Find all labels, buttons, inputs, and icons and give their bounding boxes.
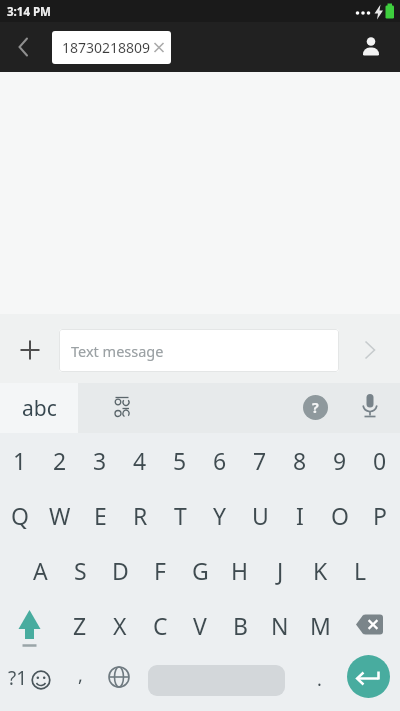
button[interactable] xyxy=(103,661,135,693)
staticText: W xyxy=(49,500,71,531)
button[interactable]: C xyxy=(140,599,180,651)
button[interactable]: Text message xyxy=(59,329,339,372)
staticText: Text message xyxy=(71,341,164,361)
button[interactable]: 3 xyxy=(80,434,120,486)
staticText: D xyxy=(112,555,129,586)
staticText: R xyxy=(133,500,148,531)
button[interactable] xyxy=(355,389,385,427)
staticText: A xyxy=(33,555,48,586)
staticText: 7 xyxy=(253,445,267,476)
staticText: O xyxy=(331,500,349,531)
staticText: Z xyxy=(73,610,87,641)
button[interactable] xyxy=(346,599,394,651)
staticText: T xyxy=(174,500,187,531)
staticText: 4 xyxy=(133,445,147,476)
button[interactable]: Y xyxy=(200,489,240,541)
button[interactable] xyxy=(11,331,49,369)
staticText: 0 xyxy=(373,445,387,476)
button[interactable]: ? xyxy=(303,395,328,420)
button[interactable]: E xyxy=(80,489,120,541)
button[interactable]: 8 xyxy=(280,434,320,486)
button[interactable]: 7 xyxy=(240,434,280,486)
button[interactable] xyxy=(148,665,285,696)
button[interactable] xyxy=(354,30,388,64)
button[interactable]: L xyxy=(340,544,380,596)
button[interactable]: F xyxy=(140,544,180,596)
staticText: L xyxy=(354,555,367,586)
button[interactable]: W xyxy=(40,489,80,541)
staticText: 6 xyxy=(213,445,227,476)
button[interactable]: I xyxy=(280,489,320,541)
staticText: , xyxy=(78,663,83,688)
staticText: C xyxy=(153,610,168,641)
button[interactable]: J xyxy=(260,544,300,596)
button[interactable]: 18730218809 xyxy=(52,31,171,64)
staticText: I xyxy=(296,500,304,531)
button[interactable]: G xyxy=(180,544,220,596)
button[interactable]: M xyxy=(300,599,340,651)
button[interactable]: Z xyxy=(60,599,100,651)
staticText: 9 xyxy=(333,445,347,476)
button[interactable]: U xyxy=(240,489,280,541)
staticText: 18730218809 xyxy=(62,38,151,57)
button[interactable]: N xyxy=(260,599,300,651)
button[interactable] xyxy=(347,655,390,698)
staticText: 2 xyxy=(53,445,67,476)
staticText: ?1 xyxy=(8,665,28,691)
staticText: 3 xyxy=(93,445,107,476)
staticText: Q xyxy=(11,500,29,531)
staticText: 3:14 PM xyxy=(7,4,51,20)
button[interactable]: abc xyxy=(0,383,78,433)
staticText: N xyxy=(271,610,289,641)
button[interactable]: 2 xyxy=(40,434,80,486)
staticText: 1 xyxy=(13,445,27,476)
button[interactable]: A xyxy=(20,544,60,596)
staticText: U xyxy=(252,500,269,531)
button[interactable] xyxy=(352,332,388,368)
button[interactable] xyxy=(10,599,50,651)
button[interactable]: ?1 xyxy=(6,655,56,703)
staticText: K xyxy=(313,555,328,586)
button[interactable]: 1 xyxy=(0,434,40,486)
button[interactable] xyxy=(10,34,38,60)
button[interactable]: D xyxy=(100,544,140,596)
staticText: M xyxy=(310,610,331,641)
staticText: V xyxy=(193,610,207,641)
staticText: H xyxy=(231,555,249,586)
button[interactable]: T xyxy=(160,489,200,541)
staticText: P xyxy=(373,500,387,531)
staticText: S xyxy=(74,555,87,586)
staticText: abc xyxy=(22,394,57,423)
button[interactable]: 6 xyxy=(200,434,240,486)
button[interactable]: K xyxy=(300,544,340,596)
staticText: G xyxy=(192,555,209,586)
button[interactable]: 5 xyxy=(160,434,200,486)
staticText: E xyxy=(94,500,107,531)
button[interactable]: V xyxy=(180,599,220,651)
staticText: J xyxy=(277,555,284,586)
staticText: Y xyxy=(213,500,227,531)
button[interactable]: H xyxy=(220,544,260,596)
staticText: X xyxy=(113,610,127,641)
button[interactable]: 9 xyxy=(320,434,360,486)
button[interactable]: R xyxy=(120,489,160,541)
staticText: . xyxy=(317,667,322,692)
staticText: F xyxy=(154,555,166,586)
button[interactable]: , xyxy=(60,651,100,699)
staticText: ? xyxy=(312,398,319,417)
button[interactable]: P xyxy=(360,489,400,541)
staticText: 5 xyxy=(173,445,187,476)
button[interactable]: 4 xyxy=(120,434,160,486)
staticText: 8 xyxy=(293,445,307,476)
button[interactable]: S xyxy=(60,544,100,596)
button[interactable]: B xyxy=(220,599,260,651)
button[interactable] xyxy=(98,383,146,433)
button[interactable]: 0 xyxy=(360,434,400,486)
button[interactable]: . xyxy=(303,655,335,703)
button[interactable]: O xyxy=(320,489,360,541)
staticText: B xyxy=(233,610,248,641)
button[interactable]: X xyxy=(100,599,140,651)
button[interactable]: Q xyxy=(0,489,40,541)
